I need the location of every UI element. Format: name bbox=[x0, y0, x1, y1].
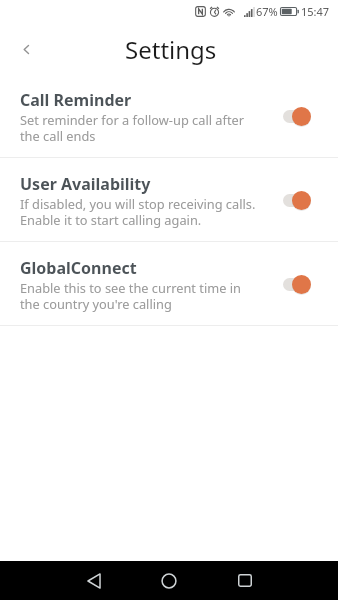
button[interactable]: Home bbox=[147, 561, 191, 600]
button[interactable]: Toggle bbox=[283, 275, 311, 294]
button[interactable]: Call Reminder bbox=[0, 74, 338, 157]
button[interactable]: Toggle bbox=[283, 107, 311, 126]
button[interactable]: Recents bbox=[223, 561, 267, 600]
staticText: 15:47 bbox=[301, 4, 330, 19]
button[interactable]: GlobalConnect bbox=[0, 242, 338, 325]
staticText: Set reminder for a follow-up call after … bbox=[20, 111, 245, 144]
staticText: Settings bbox=[125, 33, 217, 66]
staticText: 67% bbox=[256, 4, 278, 19]
button[interactable]: Toggle bbox=[283, 191, 311, 210]
staticText: If disabled, you will stop receiving cal… bbox=[20, 195, 256, 228]
button[interactable]: User Availability bbox=[0, 158, 338, 241]
staticText: User Availability bbox=[20, 173, 151, 195]
staticText: Call Reminder bbox=[20, 89, 132, 111]
staticText: GlobalConnect bbox=[20, 257, 137, 279]
button[interactable]: Back bbox=[70, 561, 114, 600]
button[interactable]: Back bbox=[6, 28, 46, 68]
staticText: Enable this to see the current time in t… bbox=[20, 279, 241, 312]
